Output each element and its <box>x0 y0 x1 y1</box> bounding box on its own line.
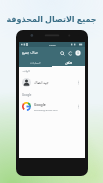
staticText: حسابات <box>30 61 41 65</box>
button[interactable]: حذف جميع <box>19 47 85 58</box>
staticText: Google <box>34 102 46 107</box>
button[interactable]: More options <box>75 79 82 86</box>
staticText: جهة اتصال <box>34 80 49 85</box>
staticText: 10:30 <box>49 43 56 46</box>
staticText: الهاتف <box>22 69 30 72</box>
staticText: الكل <box>65 61 72 65</box>
button[interactable]: Info <box>74 49 82 57</box>
button[interactable]: حسابات <box>19 58 52 67</box>
staticText: Google <box>22 93 32 97</box>
button[interactable]: Search <box>58 49 66 57</box>
button[interactable]: Refresh <box>66 49 74 57</box>
button[interactable]: Google <box>19 98 85 115</box>
button[interactable]: جهة اتصال <box>19 74 85 91</box>
button[interactable]: More options <box>75 103 82 110</box>
button[interactable]: الكل <box>52 58 85 67</box>
staticText: جميع الاتصال المحذوفة <box>4 13 99 24</box>
staticText: حذف جميع <box>22 50 39 55</box>
staticText: example@gmail.com <box>34 108 58 111</box>
